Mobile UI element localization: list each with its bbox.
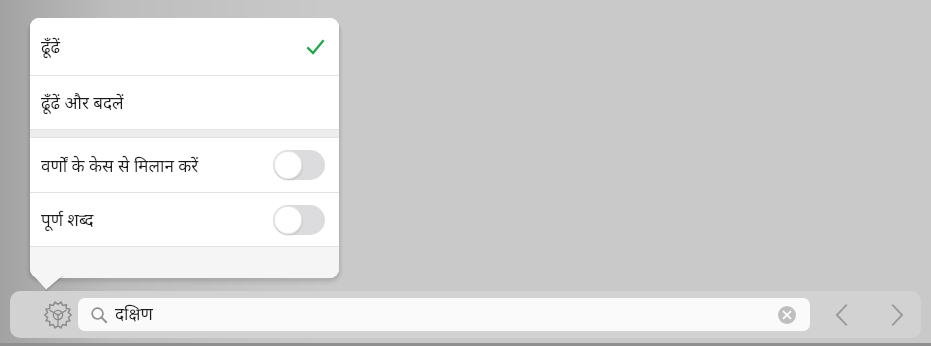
staticText: ढूँढें (41, 35, 305, 58)
staticText: वर्णों के केस से मिलान करें (41, 154, 273, 177)
button[interactable]: Clear search (776, 304, 798, 326)
button[interactable]: वर्णों के केस से मिलान करें (30, 138, 339, 192)
button[interactable]: Search settings (38, 295, 78, 335)
button[interactable]: पूर्ण शब्द (30, 193, 339, 246)
button[interactable]: दक्षिण (78, 298, 810, 331)
staticText: पूर्ण शब्द (41, 208, 273, 231)
staticText: ढूँढें और बदलें (41, 91, 325, 114)
button[interactable]: Toggle (273, 205, 325, 235)
button[interactable]: Next result (873, 294, 921, 336)
button[interactable]: Previous result (818, 294, 866, 336)
button[interactable]: ढूँढें (30, 18, 339, 75)
button[interactable]: Toggle (273, 150, 325, 180)
button[interactable]: ढूँढें और बदलें (30, 76, 339, 129)
staticText: दक्षिण (115, 302, 153, 325)
